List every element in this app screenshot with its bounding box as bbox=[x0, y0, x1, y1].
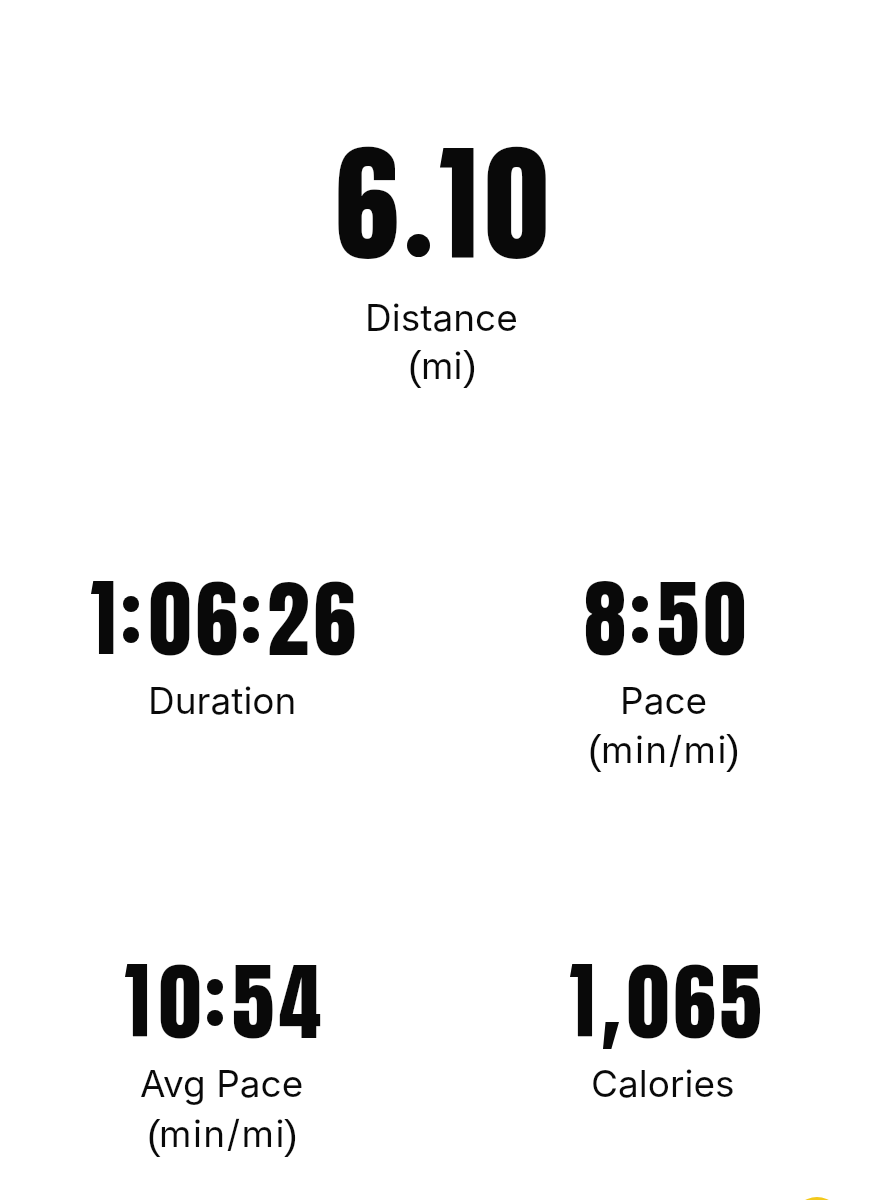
staticText: ) bbox=[463, 343, 477, 389]
button[interactable]: Average pace 10:54 per mile bbox=[56, 957, 388, 1157]
button[interactable]: Start activity bbox=[792, 1197, 842, 1200]
staticText: Pace bbox=[620, 678, 708, 723]
staticText: ) bbox=[726, 727, 740, 773]
staticText: 8 bbox=[584, 555, 627, 683]
staticText: Distance bbox=[365, 295, 518, 340]
staticText: min/mi bbox=[159, 1111, 286, 1156]
staticText: 06 bbox=[149, 555, 243, 683]
staticText: 54 bbox=[232, 938, 327, 1066]
staticText: min/mi bbox=[601, 727, 728, 772]
button[interactable]: 1,065 calories bbox=[498, 957, 830, 1157]
staticText: 0 bbox=[159, 938, 202, 1066]
staticText: Calories bbox=[591, 1061, 735, 1106]
staticText: 50 bbox=[657, 555, 751, 683]
button[interactable]: Duration 1 hour 6 minutes 26 seconds bbox=[56, 574, 388, 774]
button[interactable]: Pace 8:50 per mile bbox=[498, 574, 830, 774]
staticText: 0 bbox=[485, 107, 549, 300]
staticText: Avg Pace bbox=[140, 1061, 304, 1106]
staticText: 065 bbox=[627, 938, 766, 1066]
staticText: ( bbox=[588, 727, 602, 773]
staticText: 26 bbox=[267, 555, 361, 683]
staticText: ( bbox=[408, 343, 422, 389]
staticText: Duration bbox=[148, 678, 297, 723]
staticText: 6 bbox=[335, 107, 399, 300]
button[interactable]: Distance 6.10 miles bbox=[264, 140, 620, 390]
staticText: ) bbox=[284, 1112, 298, 1158]
staticText: mi bbox=[421, 343, 463, 388]
staticText: ( bbox=[147, 1112, 161, 1158]
